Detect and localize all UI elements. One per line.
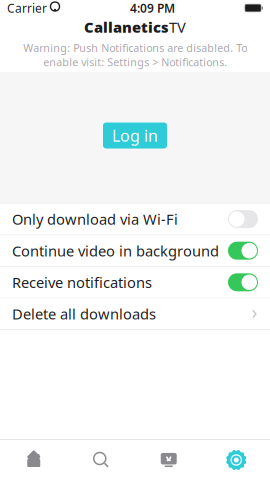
button[interactable]: Home (0, 440, 67, 480)
staticText: TV (169, 17, 186, 37)
button[interactable]: Continue video in background (0, 235, 270, 267)
staticText: Only download via Wi-Fi (12, 209, 178, 229)
button[interactable]: Log in (103, 122, 167, 148)
staticText: Delete all downloads (12, 304, 156, 324)
button[interactable]: Settings (202, 440, 270, 480)
staticText: Callanetics (84, 17, 169, 37)
staticText: Log in (112, 125, 158, 146)
button[interactable]: Delete all downloads (0, 298, 270, 330)
button[interactable]: Receive notifications (0, 267, 270, 298)
staticText: 4:09 PM (130, 0, 175, 16)
button[interactable]: Only download via Wi-Fi (0, 204, 270, 235)
button[interactable]: Search (67, 440, 135, 480)
staticText: Receive notifications (12, 273, 152, 292)
button[interactable]: Videos (135, 440, 202, 480)
staticText: Warning: Push Notifications are disabled… (23, 41, 247, 69)
staticText: Carrier (7, 0, 47, 16)
staticText: Continue video in background (12, 241, 219, 260)
